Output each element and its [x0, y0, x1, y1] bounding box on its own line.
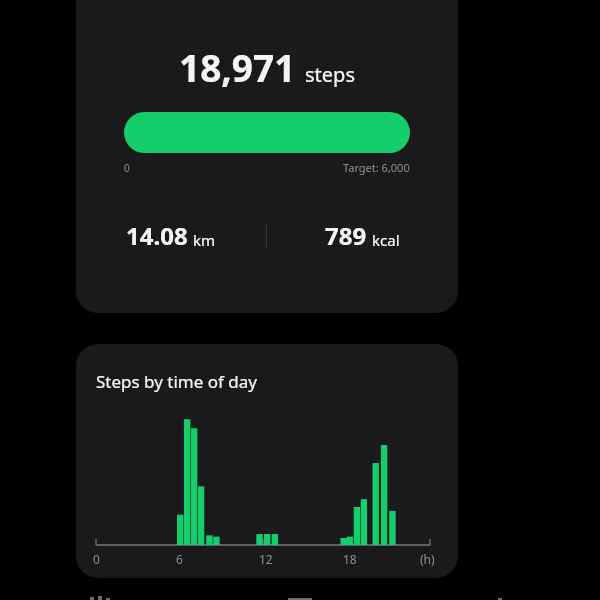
button[interactable]: 18,971	[76, 0, 458, 313]
button[interactable]	[124, 112, 410, 153]
staticText: Target: 6,000	[343, 160, 410, 175]
staticText: 789	[325, 219, 367, 252]
staticText: 6	[176, 551, 183, 567]
button[interactable]: Steps by time of day	[76, 344, 458, 578]
staticText: 12	[259, 551, 273, 567]
staticText: 14.08	[126, 219, 188, 252]
staticText: steps	[305, 61, 355, 88]
button[interactable]: Activity	[0, 596, 200, 600]
staticText: Steps by time of day	[96, 370, 257, 393]
button[interactable]: Profile	[400, 596, 600, 600]
button[interactable]: Sleep	[200, 596, 400, 600]
staticText: (h)	[420, 551, 435, 567]
staticText: 18,971	[179, 42, 296, 92]
staticText: 18	[343, 551, 357, 567]
staticText: 0	[93, 551, 100, 567]
staticText: 0	[124, 161, 130, 175]
staticText: km	[193, 230, 216, 250]
staticText: kcal	[372, 230, 400, 250]
